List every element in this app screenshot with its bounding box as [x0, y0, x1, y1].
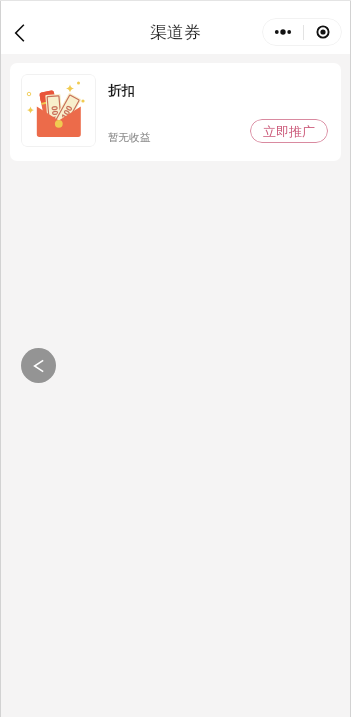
button[interactable]: Back: [0, 12, 40, 54]
button[interactable]: 立即推广: [250, 119, 328, 143]
button[interactable]: Close mini program: [304, 18, 342, 46]
staticText: 立即推广: [263, 123, 315, 139]
button[interactable]: More options: [262, 18, 303, 46]
staticText: 暂无收益: [108, 131, 151, 144]
staticText: 渠道券: [150, 22, 201, 43]
button[interactable]: Back: [21, 348, 56, 383]
button[interactable]: 折扣: [10, 63, 341, 161]
staticText: 折扣: [108, 82, 135, 99]
